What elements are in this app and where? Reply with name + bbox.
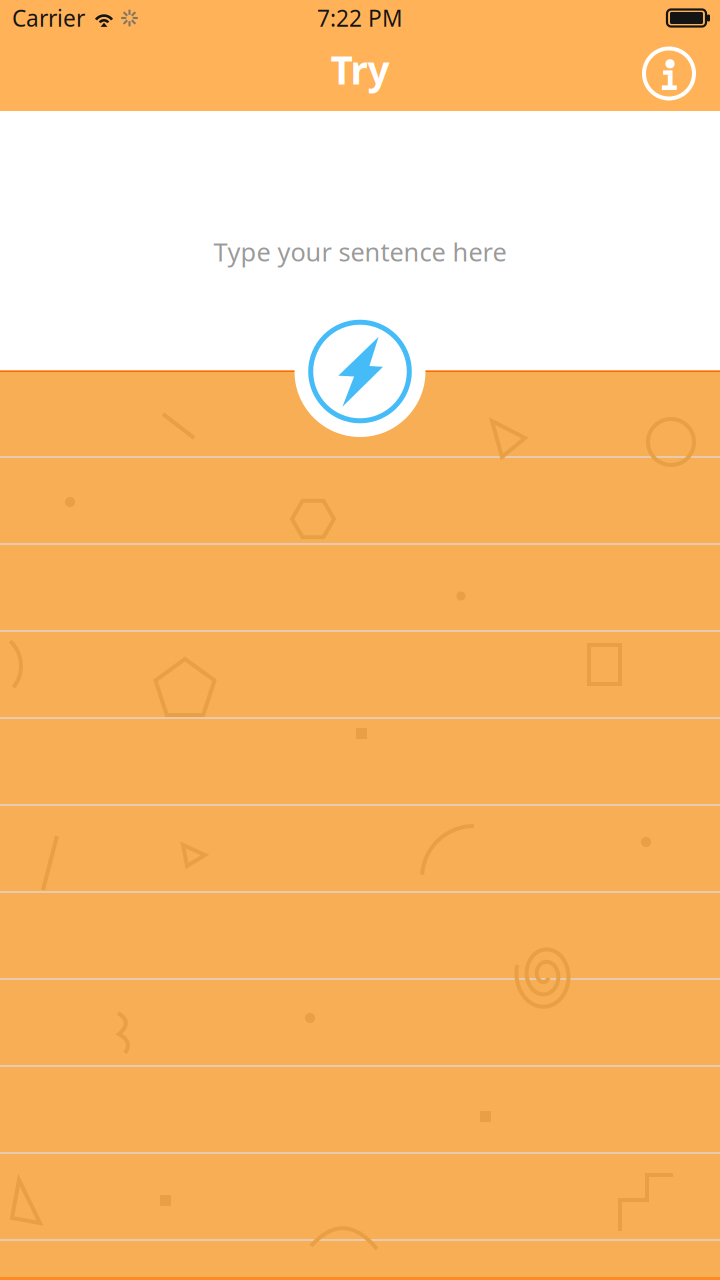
staticText: Carrier: [12, 3, 85, 33]
button[interactable]: Info: [641, 45, 697, 101]
staticText: Type your sentence here: [213, 235, 506, 268]
staticText: 7:22 PM: [317, 3, 403, 33]
staticText: Try: [330, 44, 389, 95]
